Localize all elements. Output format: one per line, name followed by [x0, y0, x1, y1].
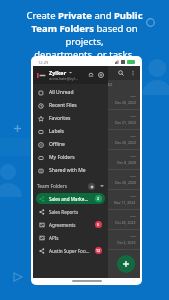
button[interactable]: Favorites — [33, 112, 108, 125]
staticText: Sales and Marke... — [49, 196, 89, 202]
staticText: Sales Reports — [49, 209, 79, 215]
staticText: Dec 26, 2023 — [115, 100, 136, 105]
button[interactable]: Recent Files — [33, 99, 108, 112]
staticText: Offline — [49, 141, 65, 148]
staticText: Agreements — [49, 222, 76, 228]
other: More options — [130, 70, 136, 76]
staticText: 2 — [97, 196, 100, 201]
staticText: Dec 26, 2020 — [115, 180, 136, 185]
staticText: APIs — [49, 235, 59, 241]
button[interactable]: Labels — [33, 125, 108, 138]
staticText: Oct 28, 2023 — [115, 220, 136, 225]
other: Settings — [98, 72, 104, 78]
button[interactable]: My Folders — [33, 151, 108, 164]
button[interactable]: Austin Super Foo... — [36, 245, 105, 256]
button[interactable]: All Unread — [33, 86, 108, 99]
staticText: 12 — [96, 248, 101, 253]
staticText: Labels — [49, 128, 65, 135]
staticText: All Unread — [49, 89, 74, 96]
button[interactable]: Sales and Marke... — [36, 193, 105, 204]
staticText: Nov 11, 2024 — [114, 200, 136, 205]
staticText: Shared with Me — [49, 167, 86, 174]
staticText: Team Folders — [37, 183, 68, 190]
staticText: Oct 2, 2023 — [117, 240, 136, 245]
button[interactable]: Zylker — [33, 66, 108, 84]
staticText: Zylker — [49, 69, 67, 76]
staticText: Create Private and Public Team Folders b… — [18, 9, 151, 61]
staticText: Favorites — [49, 115, 71, 122]
staticText: Dec 21, 2023 — [115, 120, 136, 125]
button[interactable]: Shared with Me — [33, 164, 108, 177]
button[interactable]: APIs — [36, 232, 105, 243]
staticText: Dec 20, 2023 — [115, 140, 136, 145]
button[interactable]: Create new — [117, 255, 135, 273]
other: Notifications — [88, 72, 94, 78]
button[interactable]: Agreements — [36, 219, 105, 230]
button[interactable]: Sales Reports — [36, 206, 105, 217]
staticText: Dec 8, 2020 — [117, 160, 136, 165]
staticText: Recent Files — [49, 102, 77, 109]
other: Search — [118, 70, 124, 76]
other: Add team folder — [88, 183, 95, 190]
staticText: Austin Super Foo... — [49, 248, 90, 254]
staticText: AD — [107, 82, 113, 87]
button[interactable]: Team Folders — [33, 180, 108, 192]
staticText: 12:29 — [38, 60, 49, 65]
button[interactable]: Offline — [33, 138, 108, 151]
staticText: 6 — [97, 222, 100, 227]
staticText: My Folders — [49, 154, 75, 161]
staticText: anna.kate@zyl... — [49, 76, 78, 81]
